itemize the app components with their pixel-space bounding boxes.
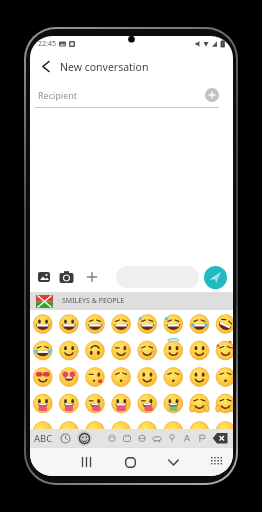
- button[interactable]: [204, 266, 227, 289]
- staticText: 22:45: [38, 39, 56, 49]
- button[interactable]: [116, 266, 199, 288]
- button[interactable]: [122, 454, 138, 470]
- button[interactable]: [86, 271, 98, 283]
- button[interactable]: [182, 433, 192, 443]
- staticText: ABC: [34, 432, 53, 445]
- button[interactable]: ABC: [34, 432, 53, 445]
- button[interactable]: Recipient: [30, 82, 233, 108]
- button[interactable]: [212, 432, 229, 445]
- staticText: Recipient: [38, 89, 78, 101]
- button[interactable]: [60, 433, 71, 444]
- button[interactable]: [107, 433, 117, 443]
- button[interactable]: [209, 454, 224, 469]
- button[interactable]: [205, 88, 219, 102]
- staticText: SMILEYS & PEOPLE: [62, 296, 125, 306]
- button[interactable]: [197, 433, 207, 443]
- button[interactable]: [167, 433, 177, 443]
- button[interactable]: [165, 454, 181, 470]
- button[interactable]: [122, 433, 132, 443]
- button[interactable]: [37, 270, 51, 284]
- button[interactable]: [38, 59, 54, 75]
- staticText: New conversation: [60, 60, 149, 74]
- button[interactable]: [152, 433, 162, 443]
- button[interactable]: [137, 433, 147, 443]
- button[interactable]: [77, 431, 92, 446]
- button[interactable]: [59, 270, 74, 285]
- button[interactable]: [78, 454, 94, 470]
